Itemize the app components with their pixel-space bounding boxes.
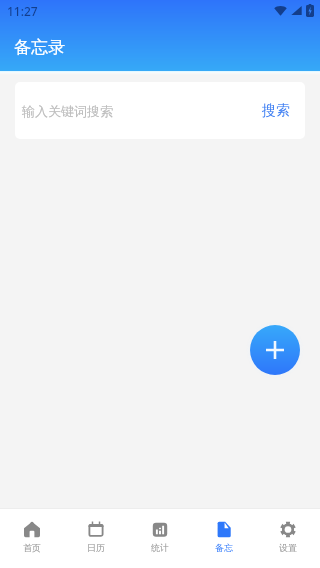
staticText: 首页 (23, 542, 41, 553)
staticText: 11:27 (7, 3, 38, 19)
button[interactable]: 首页 (0, 508, 64, 568)
button[interactable]: 搜索 (247, 88, 305, 134)
staticText: 备忘 (215, 542, 233, 553)
button[interactable]: 统计 (128, 508, 192, 568)
button[interactable]: 备忘 (192, 508, 256, 568)
staticText: 输入关键词搜索 (22, 103, 113, 119)
staticText: 搜索 (262, 102, 290, 120)
button[interactable]: Add note (250, 325, 300, 375)
button[interactable]: 设置 (256, 508, 320, 568)
staticText: 统计 (151, 542, 169, 553)
button[interactable]: 日历 (64, 508, 128, 568)
staticText: 日历 (87, 542, 105, 553)
staticText: 设置 (279, 542, 297, 553)
staticText: 备忘录 (14, 37, 65, 58)
